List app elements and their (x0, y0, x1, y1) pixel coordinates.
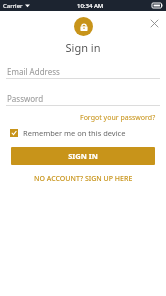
staticText: SIGN IN (68, 151, 98, 161)
button[interactable]: NO ACCOUNT? SIGN UP HERE (30, 172, 137, 186)
button[interactable]: Close (146, 15, 162, 31)
button[interactable]: Email Address (0, 64, 166, 79)
staticText: 10:34 AM (77, 2, 104, 10)
button[interactable]: Secure sign in (74, 17, 93, 36)
staticText: Email Address (7, 66, 60, 77)
staticText: Remember me on this device (23, 128, 126, 138)
staticText: Forgot your password? (80, 113, 156, 123)
button[interactable]: Forgot your password? (78, 111, 158, 125)
staticText: Carrier (3, 2, 23, 10)
staticText: NO ACCOUNT? SIGN UP HERE (34, 174, 133, 184)
button[interactable]: Password (0, 91, 166, 106)
button[interactable]: Remember me on this device (0, 126, 166, 140)
button[interactable]: SIGN IN (11, 147, 155, 165)
staticText: Password (7, 93, 44, 104)
staticText: Sign in (0, 40, 166, 55)
